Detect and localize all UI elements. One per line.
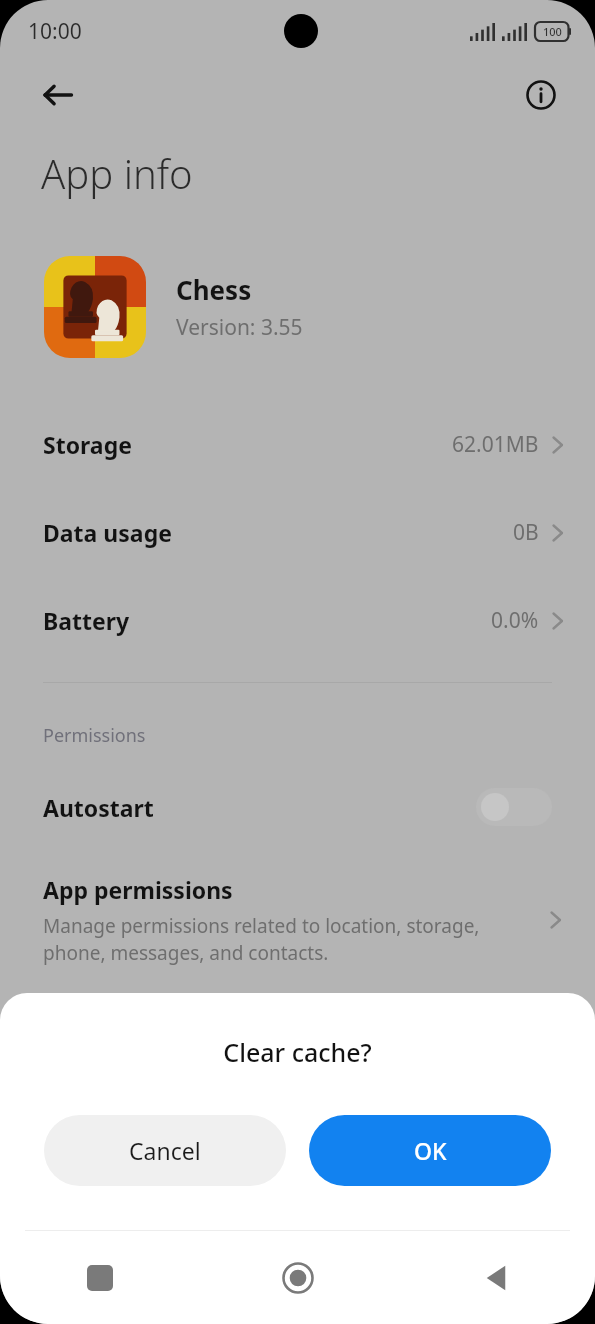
staticText: Clear cache? — [0, 1035, 595, 1069]
button[interactable]: Recent apps — [0, 1231, 199, 1324]
staticText: Version: 3.55 — [176, 313, 303, 342]
staticText: Cancel — [129, 1135, 201, 1166]
button[interactable]: Back — [30, 67, 86, 123]
staticText: App info — [41, 146, 193, 200]
staticText: App permissions — [43, 874, 233, 905]
button[interactable]: Storage — [0, 400, 595, 488]
button[interactable]: OK — [309, 1115, 551, 1186]
staticText: OK — [414, 1135, 447, 1166]
staticText: Storage — [43, 429, 132, 460]
staticText: 0B — [513, 518, 539, 547]
staticText: 62.01MB — [452, 430, 539, 459]
staticText: Battery — [43, 605, 130, 636]
staticText: Manage permissions related to location, … — [43, 913, 523, 966]
staticText: 100 — [543, 24, 562, 39]
button[interactable]: Cancel — [44, 1115, 286, 1186]
button[interactable]: Autostart — [0, 776, 595, 838]
button[interactable]: Home — [199, 1231, 397, 1324]
button[interactable]: Data usage — [0, 488, 595, 576]
button[interactable]: App details — [515, 69, 567, 121]
button[interactable]: Battery — [0, 576, 595, 664]
staticText: Chess — [176, 272, 252, 307]
staticText: Autostart — [43, 792, 154, 823]
button[interactable]: Back — [397, 1231, 595, 1324]
staticText: Permissions — [43, 723, 146, 748]
staticText: Data usage — [43, 517, 172, 548]
button[interactable]: App permissions — [0, 868, 595, 972]
staticText: 0.0% — [491, 606, 539, 635]
staticText: 10:00 — [28, 17, 82, 46]
